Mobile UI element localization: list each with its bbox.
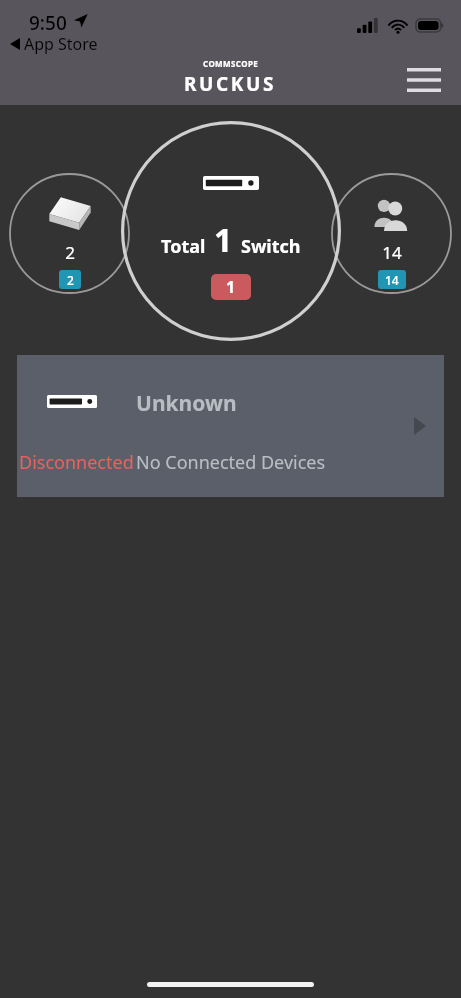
staticText: Total: [161, 234, 206, 259]
staticText: 9:50: [29, 10, 67, 36]
staticText: 2: [67, 272, 74, 288]
button[interactable]: Clients: [331, 173, 452, 294]
staticText: Switch: [241, 234, 301, 259]
button[interactable]: Menu: [402, 60, 446, 100]
button[interactable]: Total 1 Switch: [121, 121, 341, 341]
staticText: Disconnected: [19, 450, 134, 475]
staticText: 1: [226, 276, 236, 298]
staticText: COMMSCOPE: [203, 58, 259, 69]
staticText: No Connected Devices: [136, 450, 326, 475]
staticText: Unknown: [136, 389, 237, 418]
button[interactable]: Unknown: [17, 355, 444, 497]
staticText: App Store: [24, 33, 98, 55]
staticText: 2: [65, 241, 75, 264]
button[interactable]: Access Points: [9, 173, 130, 294]
staticText: 14: [385, 272, 399, 288]
staticText: RUCKUS: [184, 71, 277, 97]
staticText: 14: [382, 241, 402, 264]
staticText: 1: [214, 218, 233, 262]
